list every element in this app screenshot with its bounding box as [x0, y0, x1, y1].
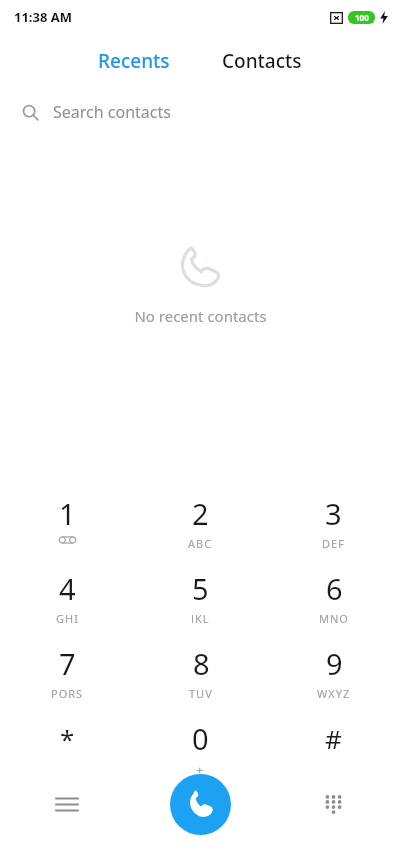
- staticText: MNO: [319, 611, 349, 623]
- staticText: #: [325, 721, 342, 756]
- button[interactable]: 2: [134, 483, 267, 558]
- staticText: 1: [59, 494, 76, 533]
- staticText: +: [196, 761, 205, 773]
- button[interactable]: Contacts: [206, 40, 318, 82]
- staticText: Contacts: [222, 48, 302, 74]
- staticText: DEF: [322, 536, 345, 548]
- staticText: 6: [326, 569, 343, 608]
- button[interactable]: 7: [0, 633, 134, 708]
- button[interactable]: Call: [170, 774, 231, 835]
- button[interactable]: Dialpad: [306, 777, 360, 831]
- staticText: 3: [325, 494, 342, 533]
- button[interactable]: Search contacts: [0, 94, 400, 130]
- staticText: 11:38 AM: [14, 8, 73, 26]
- staticText: TUV: [189, 686, 213, 698]
- button[interactable]: 4: [0, 558, 134, 633]
- button[interactable]: #: [267, 708, 400, 783]
- staticText: 0: [192, 719, 209, 758]
- staticText: Search contacts: [53, 101, 171, 123]
- staticText: ABC: [188, 536, 213, 548]
- button[interactable]: 5: [134, 558, 267, 633]
- button[interactable]: Recents: [82, 40, 186, 82]
- button[interactable]: 3: [267, 483, 400, 558]
- button[interactable]: 1: [0, 483, 134, 558]
- staticText: PQRS: [51, 686, 84, 698]
- button[interactable]: 0: [134, 708, 267, 783]
- staticText: Recents: [98, 48, 170, 74]
- button[interactable]: 8: [134, 633, 267, 708]
- button[interactable]: *: [0, 708, 134, 783]
- staticText: 4: [59, 569, 76, 608]
- staticText: 100: [355, 12, 369, 23]
- staticText: *: [60, 721, 75, 756]
- button[interactable]: Menu: [40, 777, 94, 831]
- staticText: 7: [59, 644, 76, 683]
- staticText: WXYZ: [317, 686, 351, 698]
- staticText: 8: [193, 644, 210, 683]
- button[interactable]: 6: [267, 558, 400, 633]
- staticText: 2: [192, 494, 209, 533]
- button[interactable]: 9: [267, 633, 400, 708]
- staticText: 9: [326, 644, 343, 683]
- staticText: JKL: [191, 611, 210, 623]
- staticText: 5: [192, 569, 209, 608]
- staticText: No recent contacts: [134, 306, 267, 326]
- staticText: GHI: [56, 611, 79, 623]
